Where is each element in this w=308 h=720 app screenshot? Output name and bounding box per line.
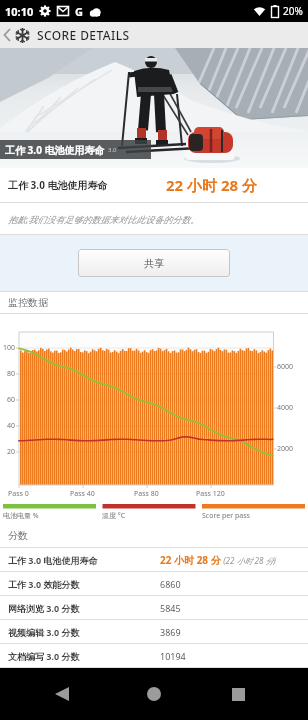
button[interactable] [224, 680, 252, 708]
staticText: Score per pass [202, 511, 250, 521]
staticText: 视频编辑 3.0 分数 [8, 626, 80, 638]
staticText: Pass 80 [134, 489, 159, 499]
button[interactable] [2, 28, 12, 42]
staticText: 电池电量 % [3, 511, 39, 521]
staticText: 温度 °C [102, 511, 126, 521]
staticText: 3.0 [108, 146, 117, 154]
button[interactable]: 网络浏览 3.0 分数 [0, 596, 308, 620]
button[interactable] [140, 680, 168, 708]
staticText: 抱歉,我们没有足够的数据来对比此设备的分数。 [8, 213, 200, 225]
staticText: 80 [7, 369, 16, 379]
staticText: 10194 [160, 650, 186, 662]
staticText: 22 小时 28 分 [166, 175, 258, 195]
staticText: 6000 [277, 362, 294, 372]
staticText: 3869 [160, 626, 181, 638]
staticText: 工作 3.0 电池使用寿命 [8, 178, 108, 192]
staticText: 20 [7, 447, 16, 457]
staticText: 20% [283, 4, 303, 18]
staticText: 60 [7, 395, 16, 405]
staticText: Pass 40 [70, 489, 95, 499]
staticText: 文档编写 3.0 分数 [8, 650, 80, 662]
staticText: 网络浏览 3.0 分数 [8, 602, 80, 614]
staticText: G [75, 4, 83, 19]
button[interactable]: 共享 [78, 249, 230, 277]
staticText: 100 [3, 343, 16, 353]
button[interactable]: 工作 3.0 电池使用寿命 [0, 548, 308, 572]
button[interactable] [48, 680, 76, 708]
staticText: 40 [7, 421, 16, 431]
staticText: Pass 120 [196, 489, 225, 499]
staticText: 工作 3.0 效能分数 [8, 578, 80, 590]
staticText: 6860 [160, 578, 181, 590]
staticText: 共享 [144, 257, 164, 270]
staticText: 5845 [160, 602, 181, 614]
staticText: 10:10 [5, 4, 34, 19]
button[interactable]: 文档编写 3.0 分数 [0, 644, 308, 668]
staticText: SCORE DETAILS [37, 27, 130, 43]
staticText: 22 小时 28 分 (22 小时 28 分) [160, 553, 276, 567]
staticText: 工作 3.0 电池使用寿命 [8, 554, 98, 566]
staticText: 2000 [277, 444, 294, 454]
staticText: 4000 [277, 403, 294, 413]
staticText: 监控数据 [8, 296, 48, 309]
staticText: 工作 3.0 电池使用寿命 [5, 143, 105, 157]
staticText: Pass 0 [8, 489, 29, 499]
button[interactable]: 视频编辑 3.0 分数 [0, 620, 308, 644]
staticText: 分数 [8, 529, 28, 542]
button[interactable]: 工作 3.0 效能分数 [0, 572, 308, 596]
